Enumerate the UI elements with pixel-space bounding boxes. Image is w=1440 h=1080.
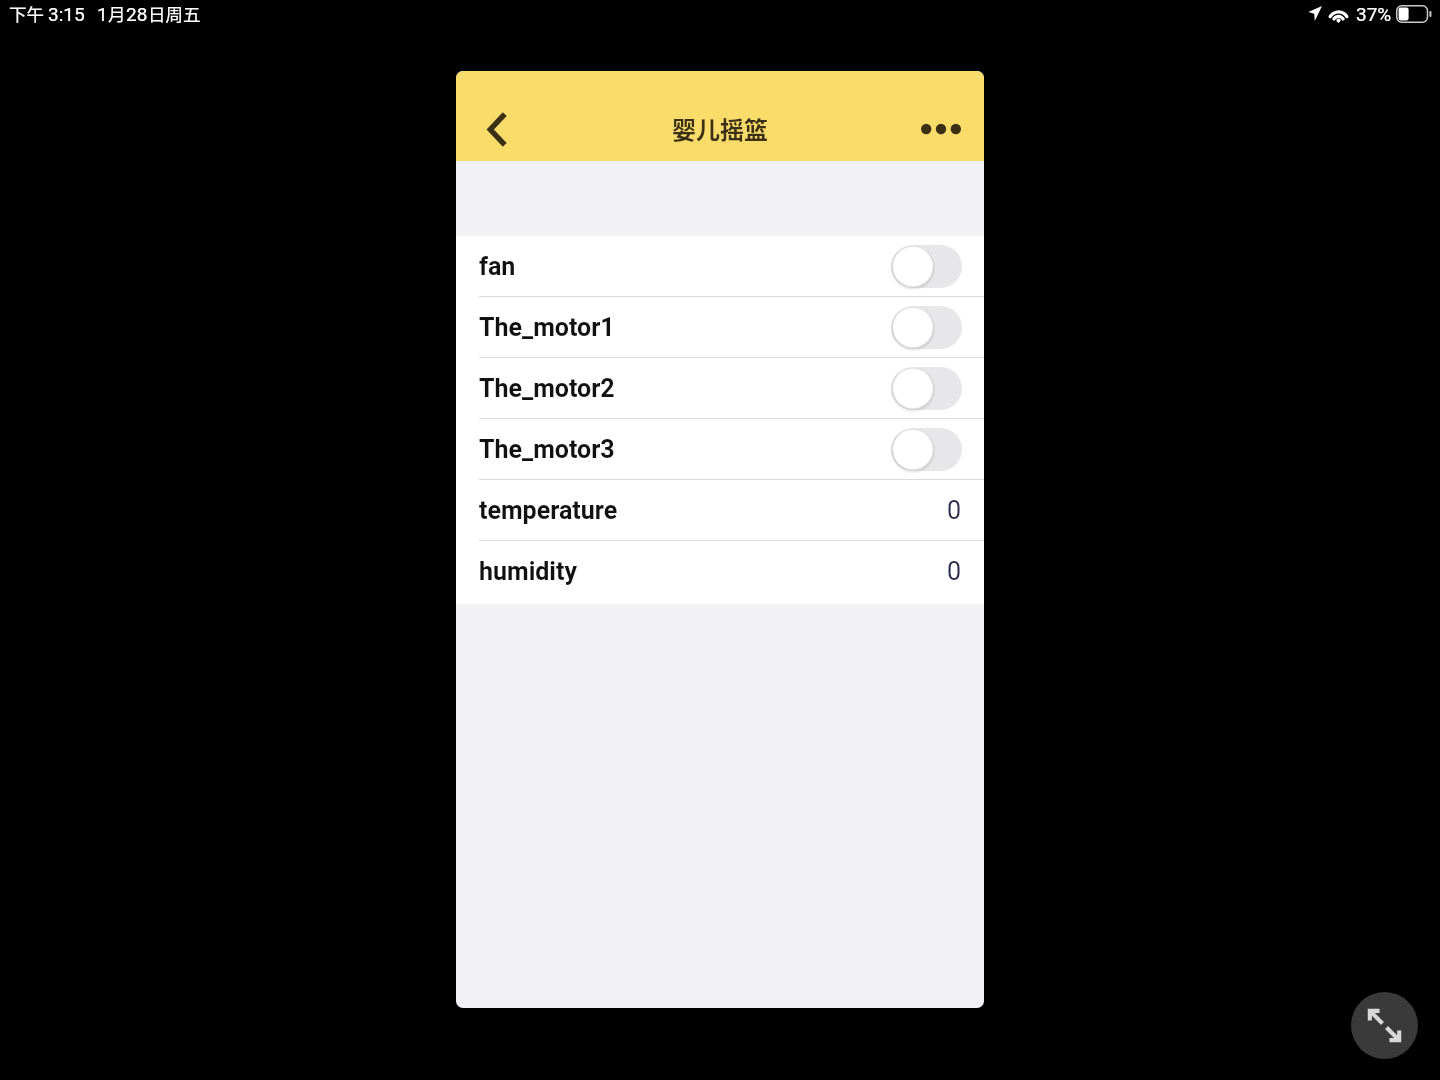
staticText: 37% — [1356, 3, 1392, 25]
button[interactable]: The_motor3 — [456, 419, 984, 480]
button[interactable]: The_motor2 — [456, 358, 984, 419]
button[interactable]: fan — [456, 236, 984, 297]
staticText: 日周五 — [148, 1, 201, 26]
staticText: The_motor1 — [479, 313, 615, 342]
staticText: 0 — [947, 557, 962, 586]
button[interactable]: humidity — [456, 541, 984, 602]
staticText: humidity — [479, 557, 578, 586]
button[interactable]: Expand — [1351, 992, 1418, 1059]
staticText: 0 — [947, 496, 962, 525]
staticText: 月 — [108, 1, 126, 26]
staticText: 3:15 — [48, 3, 85, 25]
staticText: 28 — [126, 3, 148, 25]
button[interactable]: More options — [915, 105, 967, 153]
staticText: The_motor2 — [479, 374, 615, 403]
staticText: 下午 — [9, 1, 44, 26]
button[interactable]: Toggle — [891, 367, 962, 410]
staticText: The_motor3 — [479, 435, 615, 464]
button[interactable]: Toggle — [891, 245, 962, 288]
button[interactable]: temperature — [456, 480, 984, 541]
button[interactable]: Toggle — [891, 306, 962, 349]
staticText: 婴儿摇篮 — [672, 111, 768, 146]
button[interactable]: Toggle — [891, 428, 962, 471]
button[interactable]: The_motor1 — [456, 297, 984, 358]
staticText: fan — [479, 252, 516, 281]
staticText: temperature — [479, 496, 618, 525]
staticText: 1 — [97, 3, 108, 25]
button[interactable]: Back — [473, 105, 521, 153]
